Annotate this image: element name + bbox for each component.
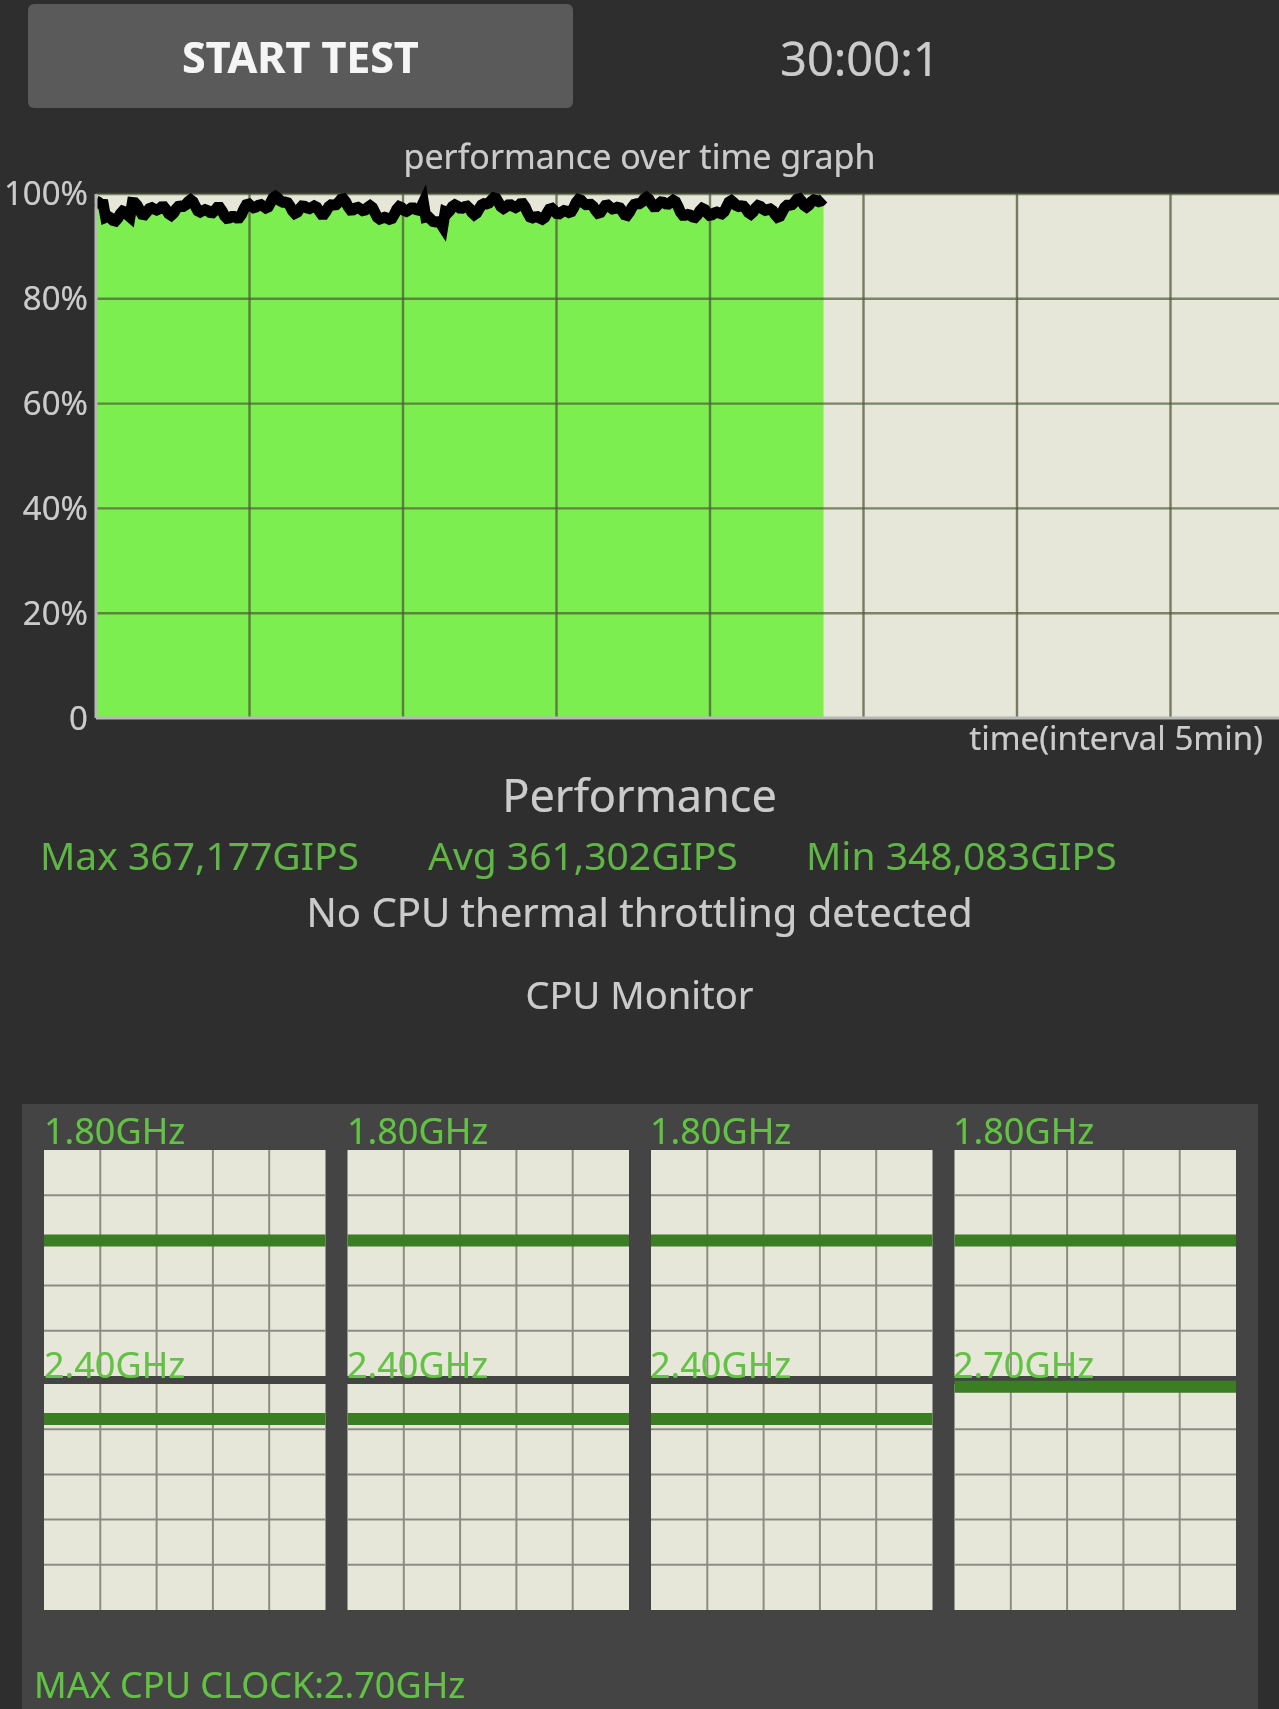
staticText: 100% — [0, 170, 88, 215]
staticText: Max 367,177GIPS — [40, 828, 359, 881]
staticText: 20% — [0, 590, 88, 635]
staticText: 2.40GHz — [347, 1340, 489, 1389]
staticText: Avg 361,302GIPS — [428, 828, 738, 881]
staticText: 60% — [0, 380, 88, 425]
staticText: No CPU thermal throttling detected — [0, 884, 1279, 938]
staticText: 1.80GHz — [347, 1106, 489, 1155]
button[interactable]: START TEST — [28, 4, 573, 108]
staticText: 30:00:1 — [780, 26, 940, 90]
staticText: 40% — [0, 485, 88, 530]
staticText: Performance — [0, 764, 1279, 825]
staticText: CPU Monitor — [0, 968, 1279, 1020]
staticText: 2.70GHz — [953, 1340, 1095, 1389]
staticText: performance over time graph — [0, 133, 1279, 179]
staticText: 1.80GHz — [650, 1106, 792, 1155]
staticText: 2.40GHz — [650, 1340, 792, 1389]
staticText: 80% — [0, 275, 88, 320]
staticText: MAX CPU CLOCK:2.70GHz — [34, 1660, 466, 1709]
staticText: 1.80GHz — [953, 1106, 1095, 1155]
button[interactable]: 1.80GHz — [22, 1104, 1258, 1709]
staticText: time(interval 5min) — [0, 715, 1263, 760]
other: Performance over time graph — [0, 170, 1279, 755]
staticText: 1.80GHz — [44, 1106, 186, 1155]
staticText: 0 — [0, 695, 88, 740]
staticText: Min 348,083GIPS — [806, 828, 1117, 881]
staticText: START TEST — [182, 27, 419, 86]
staticText: 2.40GHz — [44, 1340, 186, 1389]
